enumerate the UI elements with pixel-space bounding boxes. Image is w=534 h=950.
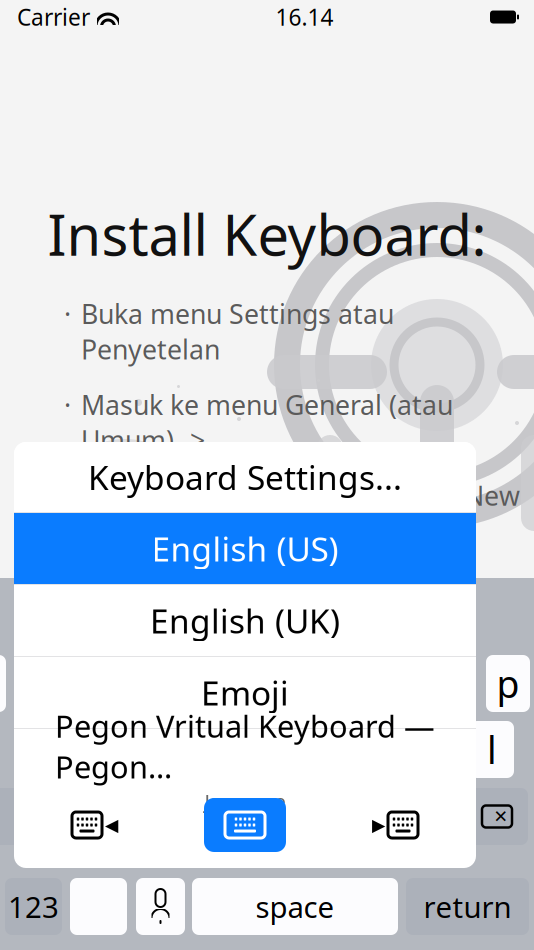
staticText: English (UK) bbox=[150, 598, 340, 643]
button[interactable]: p bbox=[486, 655, 530, 712]
button[interactable]: Dictation bbox=[136, 878, 185, 935]
staticText: 123 bbox=[8, 887, 59, 926]
button[interactable]: Delete bbox=[466, 788, 528, 845]
staticText: Keyboard Settings... bbox=[88, 455, 402, 499]
staticText: Carrier bbox=[17, 2, 90, 32]
staticText: · bbox=[64, 387, 71, 422]
button[interactable]: Keyboard Settings... bbox=[14, 442, 476, 512]
staticText: l bbox=[487, 725, 497, 774]
button[interactable]: English (UK) bbox=[14, 585, 476, 656]
staticText: 16.14 bbox=[275, 2, 333, 32]
button[interactable]: English (US) bbox=[14, 513, 476, 584]
button[interactable]: Emoji bbox=[14, 657, 476, 728]
staticText: ✕ bbox=[493, 807, 508, 826]
button[interactable]: Previous keyboard bbox=[52, 798, 138, 852]
staticText: Pegon Vritual Keyboard — Pegon... bbox=[55, 705, 435, 787]
button[interactable]: q bbox=[0, 655, 6, 712]
button[interactable]: l bbox=[470, 721, 514, 778]
staticText: space bbox=[255, 887, 334, 926]
staticText: ▶ bbox=[372, 815, 385, 835]
staticText: Keyboard. bbox=[81, 533, 207, 568]
staticText: Keyboard -> Keyboards -> Add New bbox=[81, 478, 520, 513]
button[interactable]: Current keyboard bbox=[202, 798, 288, 852]
staticText: ◀ bbox=[105, 815, 118, 835]
staticText: return bbox=[423, 887, 511, 926]
staticText: Buka menu Settings atau Penyetelan bbox=[81, 296, 394, 367]
staticText: Masuk ke menu General (atau Umum) -> bbox=[81, 387, 453, 458]
staticText: English (US) bbox=[151, 526, 338, 571]
staticText: Install Keyboard: bbox=[47, 197, 486, 271]
button[interactable]: space bbox=[192, 878, 398, 935]
button[interactable]: Pegon Vritual Keyboard — Pegon... bbox=[14, 729, 476, 791]
button[interactable]: Next keyboard bbox=[352, 798, 438, 852]
staticText: Javanese bbox=[204, 788, 285, 814]
staticText: p bbox=[496, 659, 519, 708]
staticText: Emoji bbox=[201, 670, 289, 715]
button[interactable]: 123 bbox=[5, 878, 62, 935]
button[interactable]: return bbox=[406, 878, 529, 935]
staticText: · bbox=[64, 296, 71, 331]
